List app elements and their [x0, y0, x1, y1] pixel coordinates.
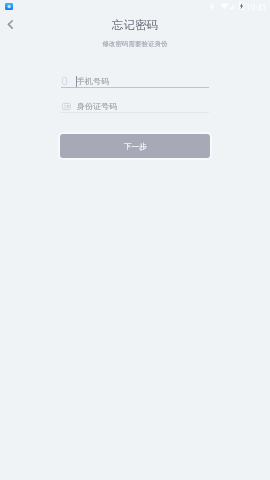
staticText: 忘记密码	[0, 18, 270, 32]
staticText: 身份证号码	[77, 101, 117, 111]
staticText: 手机号码	[77, 76, 109, 86]
staticText: 修改密码需要验证身份	[0, 40, 270, 48]
button[interactable]: Back	[0, 15, 20, 35]
staticText: 10:41	[246, 2, 267, 13]
staticText: 下一步	[124, 142, 147, 151]
button[interactable]: 下一步	[60, 134, 210, 158]
